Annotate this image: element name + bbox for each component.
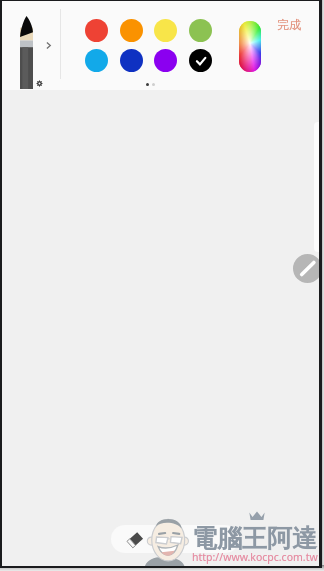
button[interactable]: Colour swatch: [120, 19, 143, 42]
staticText: http://www.kocpc.com.tw: [192, 550, 318, 564]
button[interactable]: Pen tool: [293, 254, 319, 283]
button[interactable]: Colour swatch: [189, 19, 212, 42]
button[interactable]: Colour swatch: [85, 19, 108, 42]
button[interactable]: Colour swatch: [120, 49, 143, 72]
button[interactable]: Colour swatch: [85, 49, 108, 72]
button[interactable]: Expand: [46, 42, 51, 49]
button[interactable]: Pencil: [20, 16, 33, 89]
button[interactable]: Settings: [36, 80, 43, 87]
button[interactable]: Colour swatch: [154, 19, 177, 42]
button[interactable]: Colour swatch: [189, 49, 212, 72]
staticText: 完成: [277, 17, 301, 32]
staticText: 電腦王阿達: [192, 523, 317, 554]
button[interactable]: 完成: [277, 17, 301, 32]
button[interactable]: Colour wheel: [239, 21, 261, 72]
button[interactable]: Eraser: [111, 525, 239, 553]
button[interactable]: Colour swatch: [154, 49, 177, 72]
